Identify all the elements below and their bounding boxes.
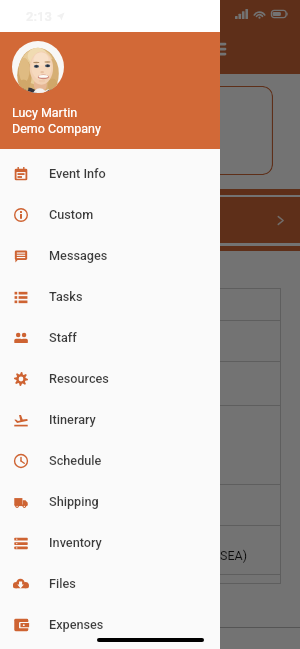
button[interactable]: Files bbox=[0, 563, 220, 604]
button[interactable]: Tasks bbox=[0, 276, 220, 317]
button[interactable]: Messages bbox=[0, 235, 220, 276]
button[interactable]: Resources bbox=[0, 358, 220, 399]
button[interactable]: Shipping bbox=[0, 481, 220, 522]
staticText: Event Details bbox=[16, 213, 86, 227]
staticText: Staff bbox=[49, 330, 77, 345]
staticText: Event Info bbox=[49, 166, 106, 181]
staticText: Files bbox=[49, 576, 76, 591]
staticText: Shipping bbox=[49, 494, 99, 509]
staticText: Seattle (SEA) bbox=[174, 548, 248, 563]
staticText: Expenses bbox=[49, 617, 104, 632]
staticText: Itinerary bbox=[49, 412, 96, 427]
button[interactable]: Event Details bbox=[0, 197, 300, 243]
button[interactable]: Event Info bbox=[0, 153, 220, 194]
button[interactable]: Expenses bbox=[0, 604, 220, 645]
button[interactable]: Custom bbox=[0, 194, 220, 235]
staticText: Summary bbox=[29, 96, 76, 109]
button[interactable]: Itinerary bbox=[0, 399, 220, 440]
staticText: Demo Company bbox=[12, 121, 101, 136]
staticText: Inventory bbox=[49, 535, 102, 550]
staticText: Tasks bbox=[49, 289, 83, 304]
button[interactable]: Schedule bbox=[0, 440, 220, 481]
button[interactable]: Open navigation menu bbox=[208, 38, 228, 58]
staticText: 2:13 bbox=[26, 9, 52, 24]
other: Open bbox=[275, 215, 286, 226]
staticText: Custom bbox=[49, 207, 94, 222]
staticText: Resources bbox=[49, 371, 109, 386]
button[interactable]: Inventory bbox=[0, 522, 220, 563]
button[interactable]: Staff bbox=[0, 317, 220, 358]
staticText: Schedule bbox=[49, 453, 102, 468]
staticText: Lucy Martin bbox=[12, 105, 78, 120]
staticText: Messages bbox=[49, 248, 108, 263]
